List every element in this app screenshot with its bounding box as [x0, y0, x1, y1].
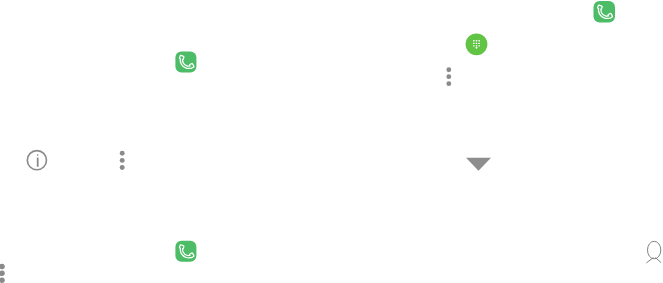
- button[interactable]: Call: [175, 51, 196, 72]
- button[interactable]: More options: [0, 260, 8, 283]
- button[interactable]: Expand: [466, 158, 491, 171]
- button[interactable]: Dialpad: [466, 33, 488, 55]
- button[interactable]: Info: [27, 150, 48, 171]
- button[interactable]: Contact: [647, 241, 661, 262]
- button[interactable]: Call: [175, 241, 196, 262]
- button[interactable]: More options: [443, 63, 455, 90]
- button[interactable]: More options: [116, 147, 128, 174]
- button[interactable]: Call: [594, 1, 616, 23]
